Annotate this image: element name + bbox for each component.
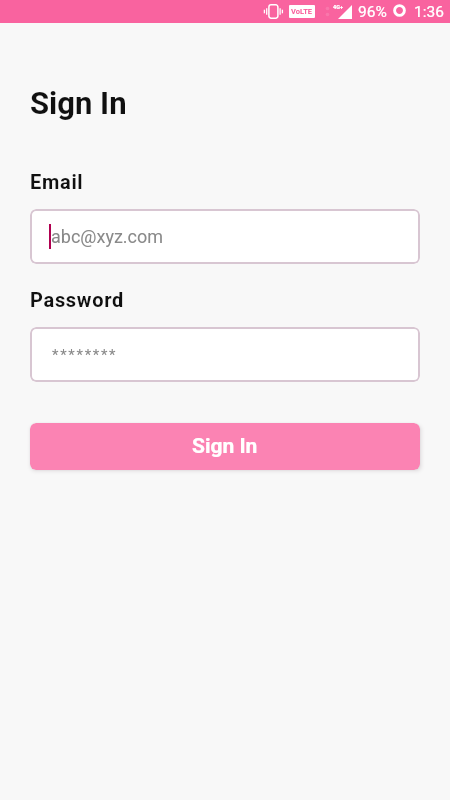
staticText: abc@xyz.com <box>51 226 164 247</box>
staticText: 96% <box>358 3 387 21</box>
staticText: VoLTE <box>291 7 313 16</box>
staticText: 4G+ <box>333 4 343 10</box>
button[interactable]: ******** <box>30 327 420 382</box>
staticText: Password <box>30 288 125 311</box>
staticText: Sign In <box>192 434 258 459</box>
staticText: Sign In <box>30 85 127 121</box>
button[interactable]: abc@xyz.com <box>30 209 420 264</box>
staticText: 1:36 <box>414 3 444 21</box>
staticText: Email <box>30 170 84 193</box>
staticText: ******** <box>52 346 118 364</box>
button[interactable]: Sign In <box>30 423 420 470</box>
